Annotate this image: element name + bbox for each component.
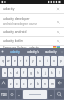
- button[interactable]: j: [42, 68, 48, 77]
- button[interactable]: c: [21, 79, 27, 88]
- staticText: l: [59, 71, 60, 75]
- button[interactable]: w: [6, 56, 11, 66]
- button[interactable]: Shift: [0, 79, 7, 88]
- button[interactable]: v: [28, 79, 34, 88]
- staticText: i: [47, 59, 48, 63]
- staticText: x: [16, 82, 18, 86]
- staticText: k: [51, 71, 53, 75]
- button[interactable]: udacity kotlin: [0, 37, 64, 45]
- button[interactable]: Space: [23, 90, 47, 99]
- button[interactable]: Period: [48, 90, 54, 99]
- staticText: p: [60, 59, 62, 63]
- button[interactable]: Insert suggestion: [55, 29, 61, 35]
- button[interactable]: h: [35, 68, 41, 77]
- staticText: udacity developer: [3, 17, 30, 21]
- staticText: m: [51, 82, 54, 86]
- button[interactable]: d: [14, 68, 20, 77]
- button[interactable]: r: [18, 56, 23, 66]
- staticText: udacity: [10, 50, 20, 54]
- staticText: audacity: [45, 50, 57, 54]
- button[interactable]: udacity's: [24, 48, 42, 55]
- button[interactable]: m: [49, 79, 55, 88]
- button[interactable]: udacity android: [0, 28, 64, 36]
- button[interactable]: s: [8, 68, 13, 77]
- button[interactable]: e: [12, 56, 17, 66]
- staticText: udacity kotlin: [3, 39, 24, 43]
- button[interactable]: f: [21, 68, 27, 77]
- button[interactable]: Samsung Galaxy - udacity developers: [0, 46, 64, 48]
- staticText: y: [32, 59, 34, 63]
- staticText: g: [30, 71, 32, 75]
- staticText: c: [23, 82, 25, 86]
- button[interactable]: x: [14, 79, 20, 88]
- button[interactable]: udacity: [5, 48, 24, 55]
- staticText: android nanodegree course: [3, 22, 37, 26]
- button[interactable]: Emoji: [9, 90, 15, 99]
- button[interactable]: Keyboard settings: [0, 48, 5, 55]
- button[interactable]: p: [58, 56, 64, 66]
- staticText: Samsung Galaxy - udacity developers: [3, 46, 51, 48]
- staticText: q: [2, 59, 4, 63]
- staticText: n: [44, 82, 46, 86]
- staticText: z: [10, 82, 12, 86]
- button[interactable]: Backspace: [56, 79, 64, 88]
- button[interactable]: Clear search: [54, 5, 61, 12]
- button[interactable]: Search: [55, 90, 64, 99]
- staticText: a: [4, 71, 6, 75]
- button[interactable]: Insert suggestion: [55, 38, 61, 44]
- staticText: w: [7, 59, 10, 63]
- button[interactable]: App icon: [52, 46, 61, 48]
- button[interactable]: y: [30, 56, 36, 66]
- button[interactable]: ?123: [0, 90, 8, 99]
- staticText: udacity: [3, 6, 15, 11]
- button[interactable]: z: [8, 79, 13, 88]
- button[interactable]: Comma: [16, 90, 22, 99]
- button[interactable]: k: [49, 68, 55, 77]
- button[interactable]: q: [0, 56, 5, 66]
- staticText: h: [37, 71, 39, 75]
- staticText: ?123: [1, 93, 7, 97]
- button[interactable]: i: [44, 56, 50, 66]
- button[interactable]: l: [56, 68, 62, 77]
- button[interactable]: t: [24, 56, 29, 66]
- button[interactable]: More suggestions: [60, 48, 64, 55]
- button[interactable]: g: [28, 68, 34, 77]
- staticText: s: [10, 71, 12, 75]
- button[interactable]: audacity: [42, 48, 60, 55]
- staticText: d: [16, 71, 18, 75]
- staticText: f: [23, 71, 25, 75]
- button[interactable]: udacity: [0, 4, 64, 13]
- staticText: t: [26, 59, 28, 63]
- staticText: udacity's: [27, 50, 39, 54]
- staticText: u: [39, 59, 41, 63]
- staticText: udacity android: [3, 30, 27, 34]
- button[interactable]: Insert suggestion: [55, 19, 61, 25]
- button[interactable]: u: [37, 56, 43, 66]
- button[interactable]: a: [2, 68, 7, 77]
- staticText: v: [30, 82, 32, 86]
- staticText: r: [20, 59, 22, 63]
- button[interactable]: o: [51, 56, 57, 66]
- staticText: o: [53, 59, 55, 63]
- button[interactable]: b: [35, 79, 41, 88]
- staticText: b: [37, 82, 39, 86]
- button[interactable]: udacity developer: [0, 16, 64, 27]
- staticText: e: [14, 59, 16, 63]
- staticText: j: [45, 71, 46, 75]
- button[interactable]: n: [42, 79, 48, 88]
